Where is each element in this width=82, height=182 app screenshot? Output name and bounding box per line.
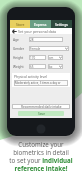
button[interactable]: cm <box>49 55 62 60</box>
staticText: Age <box>13 38 29 42</box>
staticText: Save <box>38 112 45 116</box>
staticText: Physical activity level <box>14 74 47 79</box>
button[interactable]: Recommended daily intake <box>12 104 70 109</box>
button[interactable]: Save <box>18 111 64 116</box>
staticText: Express <box>34 22 47 27</box>
button[interactable]: kg <box>49 64 62 69</box>
button[interactable]: Store <box>10 20 30 28</box>
staticText: Gender <box>13 47 29 51</box>
button[interactable]: Express <box>30 20 51 28</box>
staticText: Moderately active, 3 times a day or equi… <box>15 81 61 85</box>
button[interactable]: Settings <box>51 20 72 28</box>
staticText: 28 <box>30 38 34 42</box>
staticText: Height <box>13 56 29 60</box>
button[interactable]: Back <box>12 29 17 34</box>
staticText: Recommended daily intake <box>21 105 62 109</box>
button[interactable]: Female <box>30 46 68 51</box>
staticText: 65 <box>30 65 34 69</box>
staticText: cm <box>49 56 54 60</box>
button[interactable]: 28 <box>30 37 62 42</box>
staticText: Customize your biometrics in detail to s… <box>0 140 82 172</box>
staticText: Female <box>30 47 41 51</box>
staticText: Settings <box>55 22 68 27</box>
staticText: kg <box>49 65 53 69</box>
staticText: Set your personal data <box>18 29 57 34</box>
staticText: 170 <box>30 56 36 60</box>
button[interactable]: Physical activity level <box>12 73 70 87</box>
button[interactable]: 65 <box>30 64 45 69</box>
staticText: Weight <box>13 65 29 69</box>
button[interactable]: 170 <box>30 55 45 60</box>
staticText: Store <box>16 22 25 27</box>
